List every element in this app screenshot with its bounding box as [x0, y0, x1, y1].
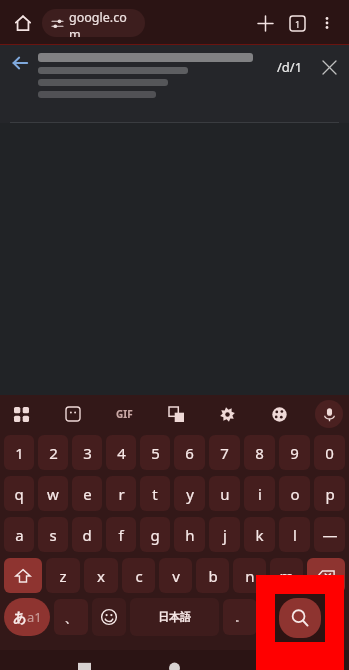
- staticText: u: [220, 484, 230, 504]
- staticText: g: [150, 525, 160, 545]
- button[interactable]: z: [46, 558, 80, 593]
- button[interactable]: g: [140, 517, 170, 552]
- button[interactable]: Back: [78, 657, 91, 670]
- staticText: a1: [27, 608, 42, 626]
- button[interactable]: i: [244, 476, 275, 511]
- staticText: j: [223, 525, 227, 545]
- staticText: c: [135, 566, 143, 586]
- staticText: 5: [151, 443, 160, 463]
- staticText: s: [49, 525, 57, 545]
- button[interactable]: Home: [8, 8, 38, 38]
- button[interactable]: o: [279, 476, 310, 511]
- staticText: n: [245, 566, 255, 586]
- button[interactable]: d: [72, 517, 102, 552]
- button[interactable]: a: [4, 517, 34, 552]
- staticText: h: [185, 525, 195, 545]
- button[interactable]: w: [38, 476, 68, 511]
- button[interactable]: m: [270, 558, 303, 593]
- button[interactable]: 3: [72, 435, 102, 470]
- button[interactable]: —: [314, 517, 345, 552]
- staticText: 9: [290, 443, 299, 463]
- staticText: あ: [13, 609, 27, 625]
- button[interactable]: y: [174, 476, 205, 511]
- button[interactable]: google.com: [42, 9, 145, 37]
- button[interactable]: n: [233, 558, 266, 593]
- button[interactable]: GIF: [109, 399, 139, 429]
- button[interactable]: c: [122, 558, 155, 593]
- button[interactable]: 4: [106, 435, 136, 470]
- button[interactable]: 8: [244, 435, 275, 470]
- button[interactable]: 2: [38, 435, 68, 470]
- button[interactable]: Close: [317, 55, 341, 79]
- button[interactable]: 6: [174, 435, 205, 470]
- button[interactable]: Themes: [264, 399, 294, 429]
- button[interactable]: f: [106, 517, 136, 552]
- staticText: 6: [185, 443, 194, 463]
- button[interactable]: 5: [140, 435, 170, 470]
- staticText: 3: [83, 443, 92, 463]
- button[interactable]: u: [209, 476, 240, 511]
- staticText: 7: [220, 443, 229, 463]
- button[interactable]: p: [314, 476, 345, 511]
- button[interactable]: Settings: [212, 399, 242, 429]
- button[interactable]: v: [159, 558, 192, 593]
- button[interactable]: 、: [54, 599, 88, 635]
- staticText: 1: [295, 18, 301, 30]
- staticText: 2: [49, 443, 58, 463]
- button[interactable]: Voice input: [315, 400, 343, 428]
- button[interactable]: 。: [223, 599, 257, 635]
- staticText: f: [118, 525, 124, 545]
- button[interactable]: t: [140, 476, 170, 511]
- button[interactable]: 9: [279, 435, 310, 470]
- button[interactable]: s: [38, 517, 68, 552]
- staticText: t: [152, 484, 158, 504]
- button[interactable]: 日本語: [130, 598, 219, 636]
- button[interactable]: Home: [168, 657, 181, 670]
- button[interactable]: Left: [261, 598, 295, 636]
- staticText: y: [186, 484, 194, 504]
- button[interactable]: l: [279, 517, 310, 552]
- staticText: 0: [325, 443, 334, 463]
- button[interactable]: Stickers: [58, 399, 88, 429]
- button[interactable]: Switch language: [4, 598, 50, 636]
- button[interactable]: j: [209, 517, 240, 552]
- button[interactable]: h: [174, 517, 205, 552]
- staticText: —: [322, 525, 338, 545]
- button[interactable]: Translate: [161, 399, 191, 429]
- staticText: 8: [255, 443, 264, 463]
- staticText: 日本語: [158, 610, 191, 624]
- button[interactable]: Apps: [6, 399, 36, 429]
- button[interactable]: r: [106, 476, 136, 511]
- button[interactable]: Emoji: [92, 598, 126, 636]
- button[interactable]: q: [4, 476, 34, 511]
- staticText: google.com: [69, 9, 137, 37]
- button[interactable]: Tabs: [281, 7, 313, 39]
- button[interactable]: More options: [313, 9, 341, 37]
- staticText: i: [258, 484, 262, 504]
- button[interactable]: New tab: [249, 7, 281, 39]
- button[interactable]: 7: [209, 435, 240, 470]
- staticText: z: [59, 566, 67, 586]
- staticText: 1: [15, 443, 24, 463]
- button[interactable]: 0: [314, 435, 345, 470]
- button[interactable]: k: [244, 517, 275, 552]
- staticText: p: [325, 484, 335, 504]
- staticText: v: [172, 566, 180, 586]
- staticText: d: [82, 525, 92, 545]
- button[interactable]: Backspace: [307, 558, 345, 593]
- staticText: w: [47, 484, 59, 504]
- button[interactable]: Search: [279, 598, 321, 638]
- button[interactable]: e: [72, 476, 102, 511]
- button[interactable]: x: [84, 558, 118, 593]
- staticText: 。: [235, 611, 245, 624]
- button[interactable]: 1: [4, 435, 34, 470]
- staticText: 4: [117, 443, 126, 463]
- staticText: 、: [64, 608, 79, 627]
- staticText: a: [15, 525, 24, 545]
- button[interactable]: b: [196, 558, 229, 593]
- staticText: e: [83, 484, 92, 504]
- button[interactable]: Shift: [4, 558, 42, 593]
- staticText: /d/1: [277, 58, 303, 76]
- staticText: x: [97, 566, 105, 586]
